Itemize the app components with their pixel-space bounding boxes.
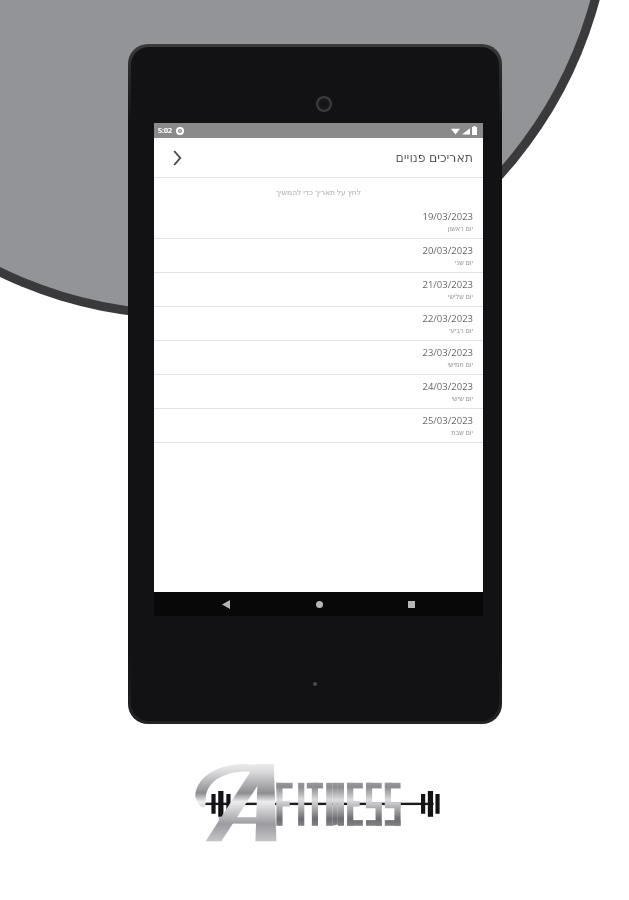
button[interactable]: 23/03/2023	[154, 341, 483, 374]
button[interactable]: 19/03/2023	[154, 205, 483, 238]
staticText: יום שני	[455, 258, 473, 267]
staticText: 24/03/2023	[422, 380, 473, 393]
staticText: יום רביעי	[449, 326, 473, 335]
button[interactable]: 20/03/2023	[154, 239, 483, 272]
button[interactable]: Back	[164, 145, 190, 171]
staticText: 21/03/2023	[422, 278, 473, 291]
button[interactable]: Home	[299, 592, 339, 616]
button[interactable]: Back	[154, 138, 483, 177]
staticText: יום שישי	[451, 394, 473, 403]
staticText: יום שבת	[451, 428, 473, 437]
staticText: 20/03/2023	[422, 244, 473, 257]
staticText: תאריכים פנויים	[395, 149, 473, 166]
button[interactable]: 25/03/2023	[154, 409, 483, 442]
staticText: לחץ על תאריך כדי להמשיך	[276, 187, 361, 197]
staticText: 25/03/2023	[422, 414, 473, 427]
staticText: יום ראשון	[447, 224, 473, 233]
staticText: יום שלישי	[447, 292, 473, 301]
button[interactable]: 22/03/2023	[154, 307, 483, 340]
staticText: 22/03/2023	[422, 312, 473, 325]
staticText: 19/03/2023	[422, 210, 473, 223]
staticText: 5:02	[158, 126, 172, 136]
button[interactable]: Back	[206, 592, 246, 616]
button[interactable]: Recent apps	[391, 592, 431, 616]
staticText: 23/03/2023	[422, 346, 473, 359]
button[interactable]: 21/03/2023	[154, 273, 483, 306]
button[interactable]: 24/03/2023	[154, 375, 483, 408]
staticText: יום חמישי	[447, 360, 473, 369]
